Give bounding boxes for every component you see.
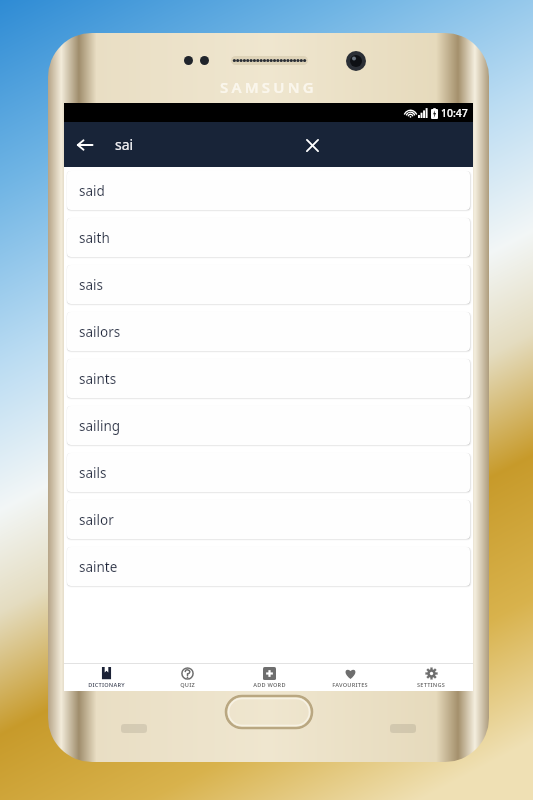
staticText: saith bbox=[79, 229, 110, 247]
button[interactable]: DICTIONARY bbox=[67, 664, 145, 691]
button[interactable]: ADD WORD bbox=[230, 664, 308, 691]
button[interactable]: sainte bbox=[67, 547, 470, 586]
button[interactable]: Back bbox=[64, 122, 106, 167]
staticText: sais bbox=[79, 276, 103, 294]
staticText: sainte bbox=[79, 558, 118, 576]
staticText: saints bbox=[79, 370, 117, 388]
staticText: FAVOURITES bbox=[332, 681, 368, 689]
button[interactable]: said bbox=[67, 171, 470, 210]
staticText: sailors bbox=[79, 323, 121, 341]
staticText: DICTIONARY bbox=[88, 681, 125, 689]
staticText: sai bbox=[115, 135, 134, 154]
staticText: QUIZ bbox=[180, 681, 195, 689]
button[interactable]: SETTINGS bbox=[392, 664, 470, 691]
button[interactable]: saith bbox=[67, 218, 470, 257]
button[interactable]: FAVOURITES bbox=[311, 664, 389, 691]
staticText: sailing bbox=[79, 417, 121, 435]
button[interactable]: sailor bbox=[67, 500, 470, 539]
button[interactable]: sais bbox=[67, 265, 470, 304]
staticText: sails bbox=[79, 464, 107, 482]
button[interactable]: Clear search bbox=[292, 125, 332, 165]
staticText: SAMSUNG bbox=[220, 77, 317, 97]
button[interactable]: sails bbox=[67, 453, 470, 492]
staticText: 10:47 bbox=[441, 106, 468, 120]
button[interactable]: QUIZ bbox=[148, 664, 226, 691]
staticText: ADD WORD bbox=[253, 681, 286, 689]
button[interactable]: sailing bbox=[67, 406, 470, 445]
staticText: SETTINGS bbox=[417, 681, 445, 689]
button[interactable]: saints bbox=[67, 359, 470, 398]
staticText: sailor bbox=[79, 511, 114, 529]
staticText: said bbox=[79, 182, 105, 200]
button[interactable]: sailors bbox=[67, 312, 470, 351]
